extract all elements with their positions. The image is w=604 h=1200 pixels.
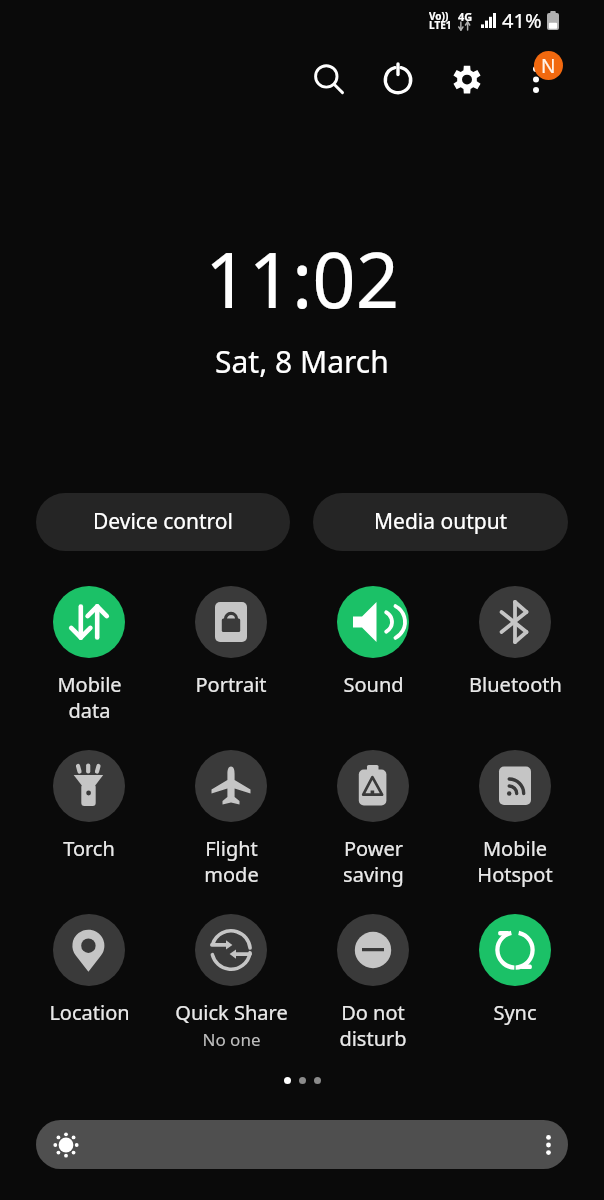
button[interactable]: Account bbox=[534, 51, 563, 80]
button[interactable]: Power off bbox=[374, 55, 422, 103]
staticText: Quick Share bbox=[175, 999, 288, 1026]
staticText: Do not disturb bbox=[339, 999, 407, 1051]
button[interactable]: More options bbox=[518, 54, 553, 102]
button[interactable]: Sound bbox=[302, 586, 444, 698]
button[interactable]: Location bbox=[18, 914, 160, 1026]
staticText: Device control bbox=[93, 507, 233, 536]
button[interactable]: Power saving bbox=[302, 750, 444, 887]
button[interactable]: Sync bbox=[444, 914, 586, 1026]
staticText: Sat, 8 March bbox=[215, 341, 389, 382]
staticText: Portrait bbox=[195, 671, 267, 698]
button[interactable]: Device control bbox=[36, 493, 290, 551]
staticText: 41% bbox=[502, 7, 542, 34]
button[interactable]: Sat, 8 March bbox=[215, 341, 389, 382]
button[interactable]: Bluetooth bbox=[444, 586, 586, 698]
staticText: Mobile data bbox=[57, 671, 122, 723]
button[interactable]: 11:02 bbox=[205, 227, 400, 331]
button[interactable]: Quick Share bbox=[160, 914, 302, 1051]
button[interactable]: Media output bbox=[313, 493, 568, 551]
button[interactable]: Brightness bbox=[36, 1120, 568, 1169]
staticText: Power saving bbox=[343, 835, 404, 887]
staticText: 4G bbox=[458, 9, 473, 24]
staticText: Sync bbox=[493, 999, 537, 1026]
button[interactable]: Mobile Hotspot bbox=[444, 750, 586, 887]
staticText: Vo)) bbox=[429, 9, 449, 23]
button[interactable]: Mobile data bbox=[18, 586, 160, 723]
staticText: Bluetooth bbox=[469, 671, 562, 698]
staticText: Torch bbox=[63, 835, 115, 862]
button[interactable]: Flight mode bbox=[160, 750, 302, 887]
staticText: N bbox=[541, 53, 556, 79]
staticText: 11:02 bbox=[205, 227, 400, 331]
staticText: Sound bbox=[343, 671, 404, 698]
button[interactable]: Portrait bbox=[160, 586, 302, 698]
button[interactable]: Do not disturb bbox=[302, 914, 444, 1051]
button[interactable]: Search bbox=[304, 55, 352, 103]
button[interactable]: Settings bbox=[443, 55, 491, 103]
staticText: Media output bbox=[374, 507, 508, 536]
staticText: Location bbox=[49, 999, 130, 1026]
staticText: Mobile Hotspot bbox=[477, 835, 553, 887]
staticText: Flight mode bbox=[204, 835, 259, 887]
staticText: LTE1 bbox=[429, 18, 452, 32]
button[interactable]: Torch bbox=[18, 750, 160, 862]
staticText: No one bbox=[202, 1028, 261, 1051]
